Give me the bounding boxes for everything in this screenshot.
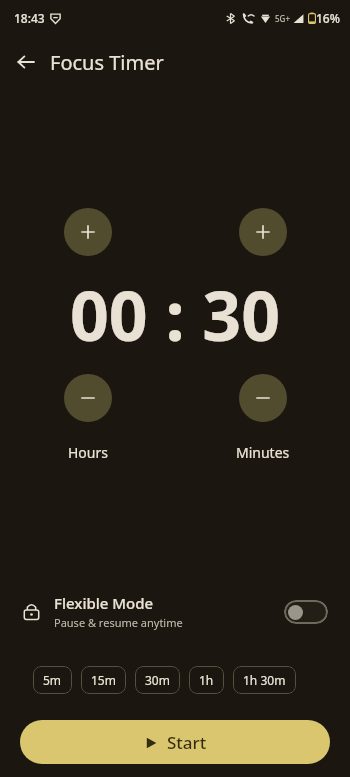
button[interactable]: Increase hours	[64, 208, 112, 256]
staticText: Minutes	[236, 443, 290, 462]
button[interactable]: Decrease hours	[64, 374, 112, 422]
button[interactable]: 30m	[135, 666, 180, 694]
staticText: 1h	[199, 672, 214, 688]
staticText: 15m	[91, 672, 116, 688]
staticText: 30m	[145, 672, 170, 688]
staticText: 18:43	[14, 10, 45, 26]
staticText: 16%	[316, 10, 340, 26]
button[interactable]: Start	[20, 720, 330, 764]
button[interactable]: Decrease minutes	[239, 374, 287, 422]
button[interactable]: Flexible Mode toggle	[284, 600, 328, 624]
staticText: Focus Timer	[50, 49, 164, 76]
button[interactable]: Back	[6, 42, 46, 82]
button[interactable]: Increase minutes	[239, 208, 287, 256]
staticText: 5G+	[275, 13, 290, 24]
button[interactable]: 1h 30m	[233, 666, 296, 694]
staticText: 5m	[43, 672, 62, 688]
button[interactable]: 15m	[81, 666, 126, 694]
staticText: 1h 30m	[243, 672, 286, 688]
staticText: Flexible Mode	[54, 593, 154, 613]
button[interactable]: 5m	[33, 666, 72, 694]
staticText: Pause & resume anytime	[54, 615, 183, 630]
staticText: 00 : 30	[0, 268, 350, 361]
staticText: Hours	[68, 443, 108, 462]
button[interactable]: Flexible Mode	[0, 587, 350, 636]
button[interactable]: 1h	[189, 666, 224, 694]
staticText: Start	[167, 731, 207, 754]
